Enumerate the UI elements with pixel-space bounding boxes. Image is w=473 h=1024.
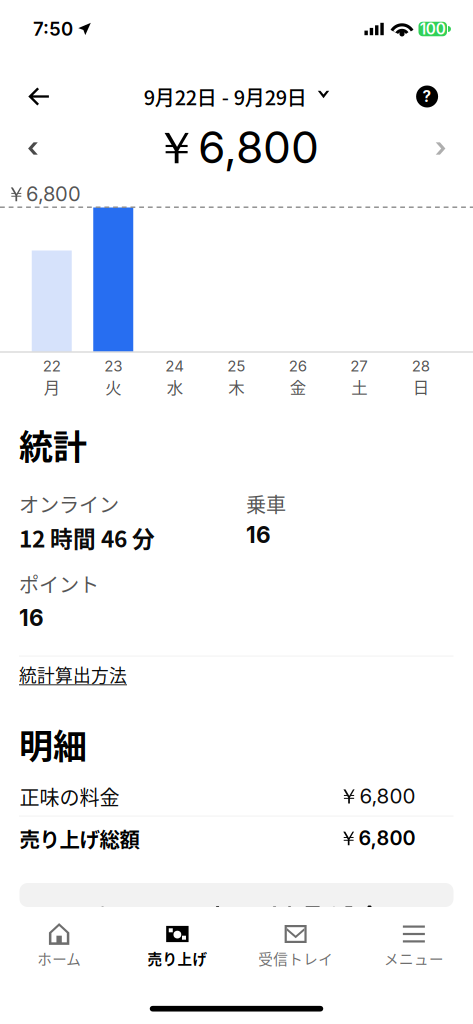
staticText: 土 [351, 375, 367, 398]
staticText: 統計 [19, 420, 87, 469]
staticText: メニュー [384, 948, 444, 969]
staticText: 12 時間 46 分 [19, 521, 155, 554]
staticText: 28 [412, 357, 430, 375]
button[interactable]: 前の週 [29, 126, 73, 170]
staticText: 24 [165, 357, 184, 375]
staticText: 正味の料金 [19, 782, 119, 811]
button[interactable]: 売り上げ [118, 923, 236, 970]
staticText: 26 [289, 357, 307, 375]
staticText: オンライン [19, 489, 119, 518]
staticText: 日 [413, 375, 429, 398]
staticText: ? [423, 87, 432, 106]
staticText: ￥6,800 [6, 182, 81, 207]
staticText: 27 [350, 357, 368, 375]
button[interactable]: 戻る [28, 74, 72, 118]
staticText: 明細 [19, 720, 87, 769]
staticText: 25 [227, 357, 245, 375]
button[interactable]: メニュー [355, 923, 473, 970]
staticText: 売り上げ総額 [19, 824, 139, 853]
button[interactable]: 9月22日 - 9月29日 [136, 74, 337, 118]
button[interactable]: ヘルプ [394, 74, 438, 118]
staticText: 7:50 [33, 18, 73, 40]
staticText: 受信トレイ [258, 948, 333, 969]
staticText: 乗車 [246, 489, 286, 518]
staticText: 22 [43, 357, 61, 375]
staticText: 100 [420, 20, 446, 38]
staticText: 16 [19, 604, 44, 631]
button[interactable]: 統計算出方法 [0, 657, 473, 698]
staticText: ￥6,800 [154, 120, 319, 176]
staticText: ホーム [37, 948, 81, 969]
staticText: 月 [44, 375, 60, 398]
staticText: ￥6,800 [338, 784, 415, 810]
staticText: 火 [105, 375, 121, 398]
staticText: 23 [104, 357, 122, 375]
staticText: 木 [228, 375, 244, 398]
staticText: 水 [167, 375, 183, 398]
staticText: ポイント [19, 569, 99, 598]
staticText: 金 [290, 375, 306, 398]
staticText: ￥6,800 [338, 826, 415, 851]
button[interactable]: 次の週 [400, 126, 444, 170]
staticText: 売り上げ [147, 948, 207, 969]
button[interactable]: 受信トレイ [236, 923, 355, 970]
staticText: キャッシュアウトでより早く入金 [94, 900, 379, 928]
staticText: 16 [246, 521, 271, 548]
button[interactable]: ホーム [0, 923, 118, 970]
staticText: 9月22日 - 9月29日 [144, 82, 307, 111]
staticText: 統計算出方法 [19, 662, 127, 687]
